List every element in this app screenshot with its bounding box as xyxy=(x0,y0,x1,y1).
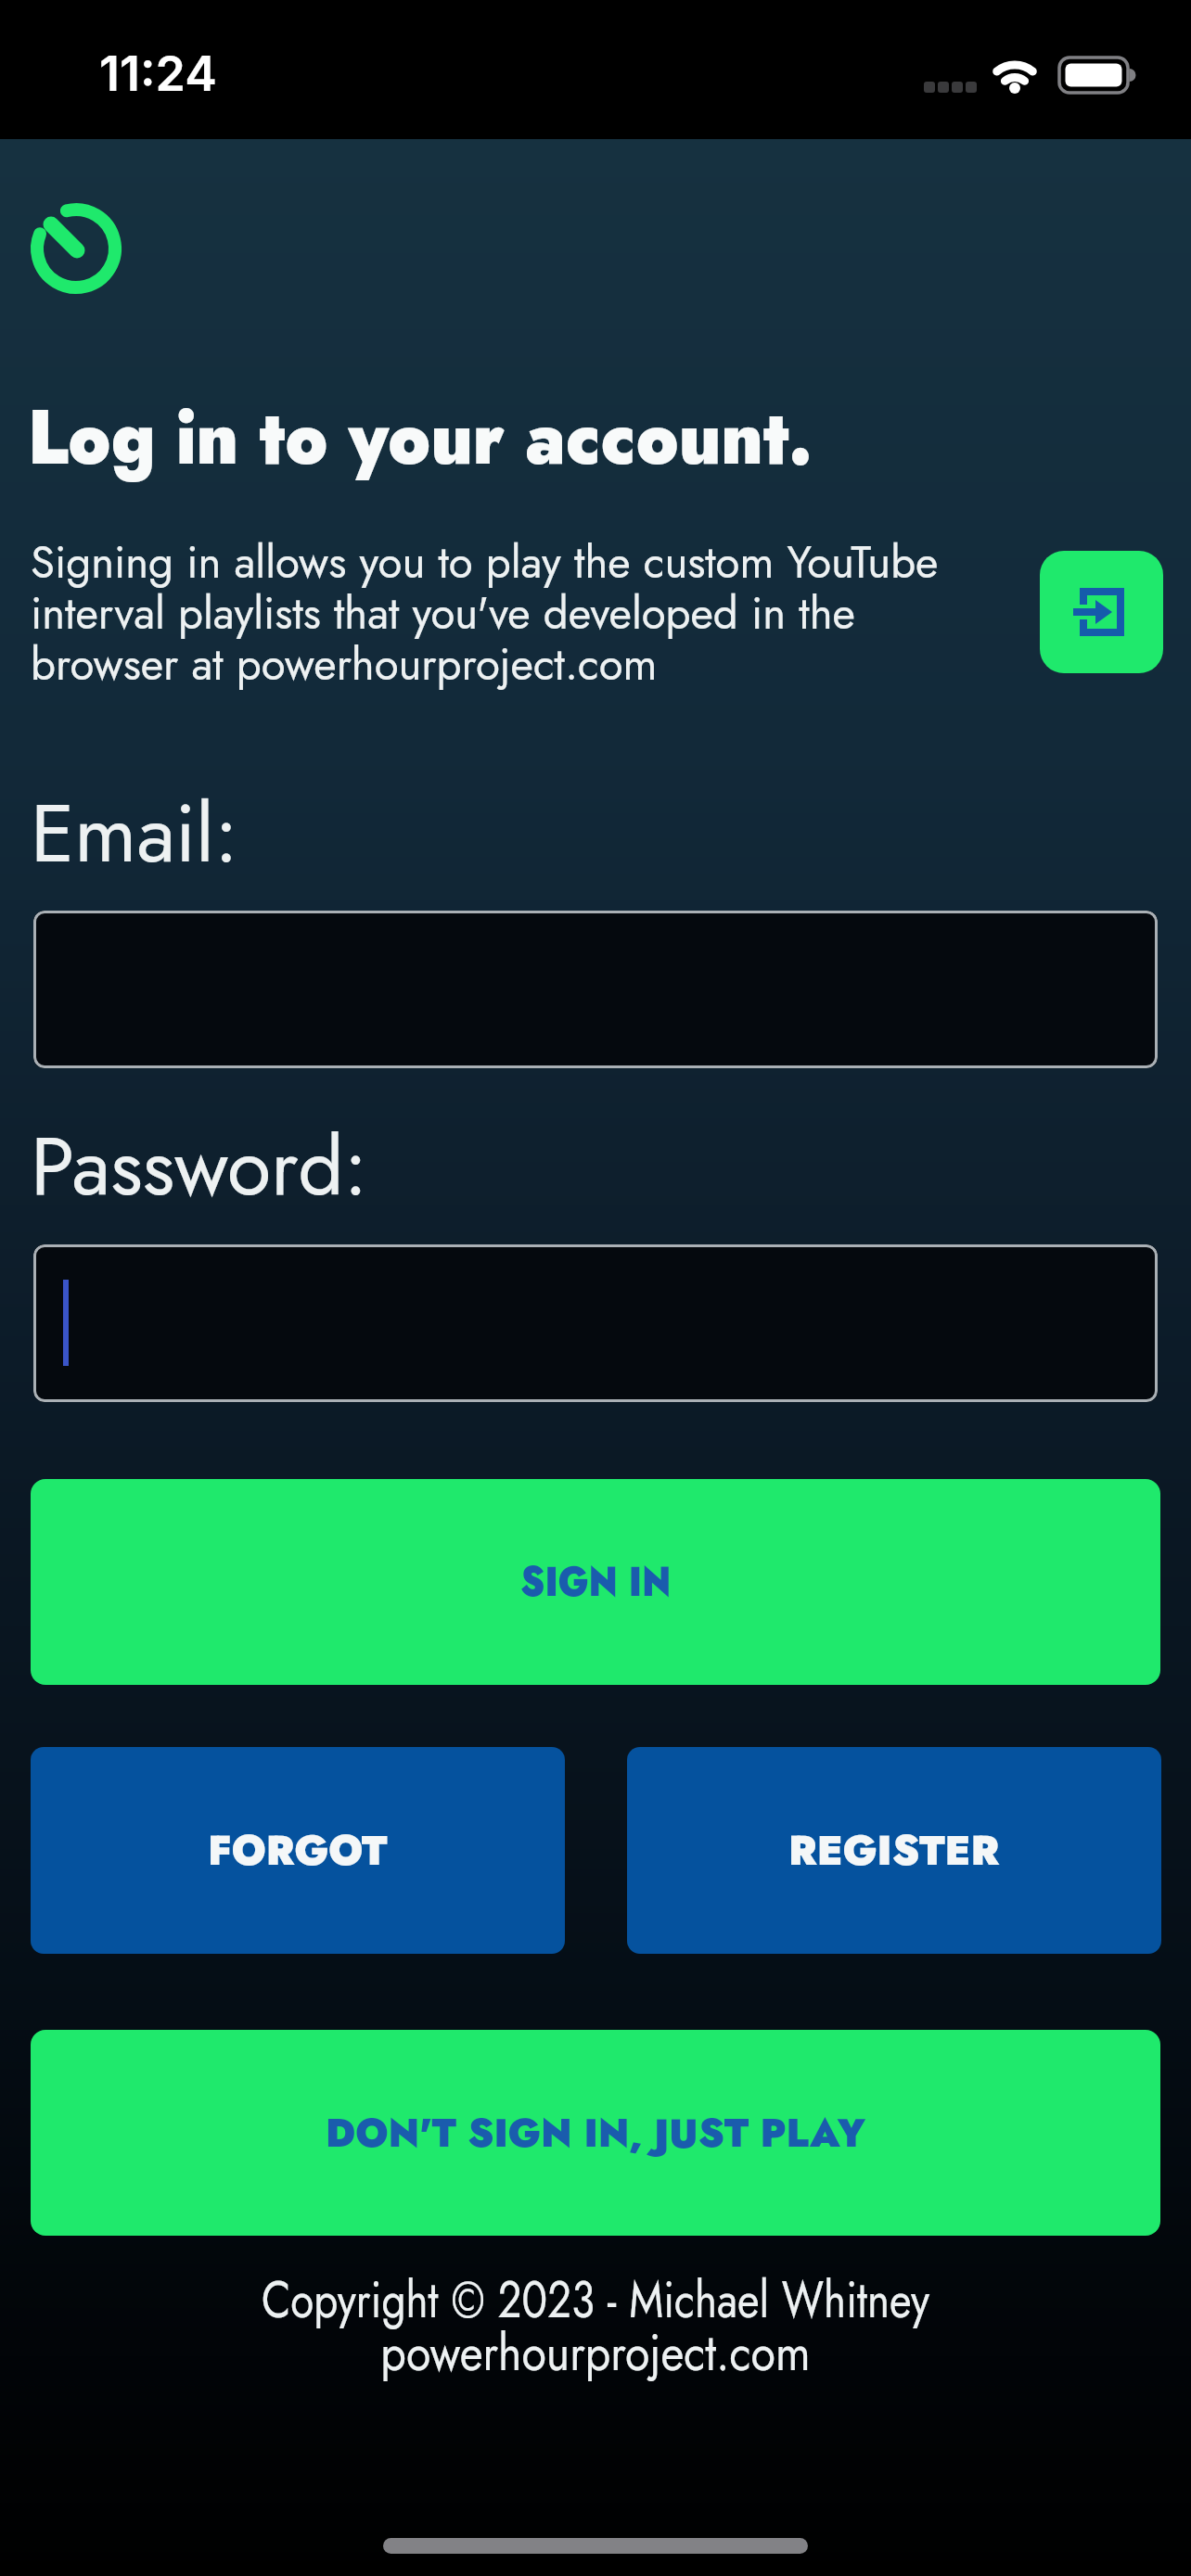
staticText: interval playlists that you've developed… xyxy=(31,581,856,645)
staticText: FORGOT xyxy=(208,1821,388,1881)
button[interactable]: SIGN IN xyxy=(31,1479,1160,1685)
button[interactable]: DON'T SIGN IN, JUST PLAY xyxy=(31,2030,1160,2236)
staticText: DON'T SIGN IN, JUST PLAY xyxy=(326,2105,866,2162)
staticText: Log in to your account. xyxy=(28,382,813,491)
staticText: powerhourproject.com xyxy=(73,2315,1118,2389)
staticText: Signing in allows you to play the custom… xyxy=(31,530,939,594)
staticText: Email: xyxy=(31,776,238,891)
button[interactable] xyxy=(1040,551,1163,673)
staticText: browser at powerhourproject.com xyxy=(31,632,657,696)
button[interactable] xyxy=(33,911,1158,1068)
button[interactable]: REGISTER xyxy=(627,1747,1161,1954)
staticText: Password: xyxy=(31,1109,368,1224)
staticText: REGISTER xyxy=(788,1821,1000,1881)
staticText: SIGN IN xyxy=(520,1552,672,1612)
staticText: Copyright © 2023 - Michael Whitney xyxy=(100,2263,1091,2336)
staticText: 11:24 xyxy=(99,45,217,103)
button[interactable] xyxy=(33,1244,1158,1402)
button[interactable]: FORGOT xyxy=(31,1747,565,1954)
